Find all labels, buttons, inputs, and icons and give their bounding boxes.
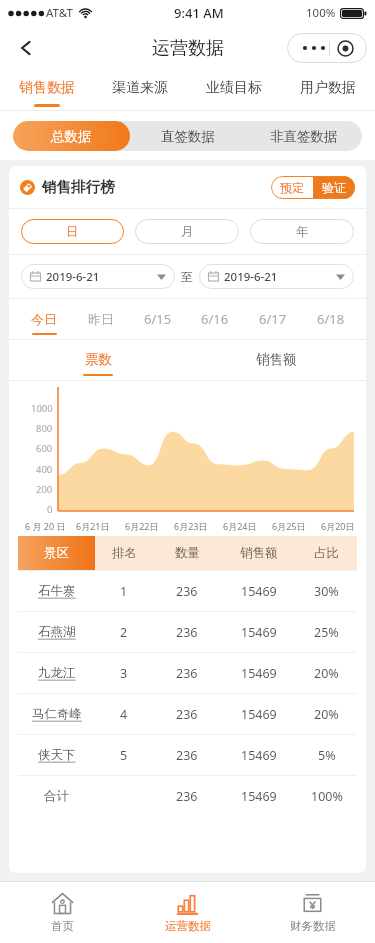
staticText: 5	[120, 747, 128, 764]
button[interactable]: 今日	[15, 299, 72, 339]
staticText: 2019-6-21	[46, 269, 100, 285]
button[interactable]: 业绩目标	[187, 70, 281, 110]
button[interactable]: 占比	[296, 536, 357, 570]
button[interactable]: 石牛寨	[18, 571, 357, 611]
staticText: 直签数据	[161, 128, 215, 145]
staticText: 侠天下	[38, 747, 76, 763]
staticText: 0	[47, 503, 53, 516]
staticText: 验证	[322, 180, 346, 195]
button[interactable]: 6/16	[186, 299, 244, 339]
staticText: 6月23日	[174, 520, 208, 532]
staticText: 3	[120, 665, 128, 682]
staticText: 15469	[241, 624, 277, 641]
staticText: 4	[120, 706, 128, 723]
staticText: 1000	[31, 402, 53, 415]
staticText: 236	[176, 747, 198, 764]
staticText: 用户数据	[300, 79, 356, 97]
staticText: 昨日	[88, 311, 114, 327]
button[interactable]: 昨日	[72, 299, 129, 339]
staticText: 25%	[314, 624, 339, 641]
staticText: 236	[176, 706, 198, 723]
staticText: 15469	[241, 665, 277, 682]
button[interactable]: 马仁奇峰	[18, 694, 357, 734]
button[interactable]: 用户数据	[281, 70, 375, 110]
staticText: 景区	[44, 545, 69, 561]
staticText: 100%	[306, 5, 336, 21]
button[interactable]: 6/18	[302, 299, 360, 339]
button[interactable]: 2019-6-21	[21, 264, 175, 289]
staticText: 销售排行榜	[42, 178, 115, 196]
button[interactable]: 非直签数据	[246, 121, 362, 151]
staticText: 236	[176, 583, 198, 600]
staticText: 800	[36, 422, 53, 435]
button[interactable]: More options and close	[287, 33, 367, 63]
staticText: 石牛寨	[38, 583, 76, 599]
staticText: 运营数据	[165, 919, 211, 933]
staticText: 数量	[175, 545, 200, 561]
staticText: 6月22日	[125, 520, 159, 532]
staticText: 236	[176, 665, 198, 682]
staticText: 236	[176, 788, 198, 805]
button[interactable]: 6/17	[244, 299, 302, 339]
button[interactable]: 直签数据	[130, 121, 246, 151]
staticText: 236	[176, 624, 198, 641]
staticText: 财务数据	[290, 919, 336, 933]
staticText: 400	[36, 463, 53, 476]
button[interactable]: 日	[21, 219, 124, 244]
button[interactable]: 数量	[153, 536, 221, 570]
button[interactable]: 合计	[18, 776, 357, 816]
staticText: 总数据	[51, 128, 92, 145]
button[interactable]: 票数	[9, 340, 187, 380]
button[interactable]: 石燕湖	[18, 612, 357, 652]
staticText: 6/15	[144, 310, 172, 328]
staticText: 马仁奇峰	[32, 706, 82, 722]
button[interactable]: Back	[6, 28, 46, 68]
staticText: 月	[181, 224, 194, 240]
button[interactable]: 财务数据	[250, 881, 375, 943]
staticText: 200	[36, 483, 53, 496]
button[interactable]: 排名	[95, 536, 153, 570]
staticText: 5%	[318, 747, 336, 764]
staticText: 15469	[241, 747, 277, 764]
staticText: 合计	[44, 788, 69, 804]
button[interactable]: 九龙江	[18, 653, 357, 693]
staticText: 6 月 20 日	[25, 520, 66, 532]
staticText: 20%	[314, 665, 339, 682]
staticText: 票数	[85, 351, 112, 368]
staticText: 6/18	[317, 310, 345, 328]
staticText: 销售额	[256, 351, 297, 368]
staticText: 年	[296, 224, 309, 240]
staticText: 渠道来源	[112, 79, 168, 97]
staticText: 9:41 AM	[174, 4, 224, 22]
button[interactable]: 首页	[0, 881, 125, 943]
staticText: 业绩目标	[206, 79, 262, 97]
button[interactable]: 2019-6-21	[199, 264, 354, 289]
staticText: 6月24日	[223, 520, 257, 532]
staticText: 日	[66, 224, 79, 240]
button[interactable]: 运营数据	[125, 881, 250, 943]
button[interactable]: 月	[135, 219, 239, 244]
staticText: 6/17	[259, 310, 287, 328]
staticText: 占比	[314, 545, 339, 561]
button[interactable]: 景区	[18, 536, 95, 570]
button[interactable]: 销售额	[221, 536, 296, 570]
staticText: 销售数据	[19, 79, 75, 97]
staticText: 6月20日	[321, 520, 355, 532]
button[interactable]: 总数据	[13, 121, 130, 151]
staticText: 6/16	[201, 310, 229, 328]
staticText: 6月25日	[272, 520, 306, 532]
staticText: 今日	[31, 311, 57, 327]
button[interactable]: 侠天下	[18, 735, 357, 775]
button[interactable]: 销售数据	[0, 70, 93, 110]
button[interactable]: 销售额	[187, 340, 366, 380]
staticText: 2019-6-21	[224, 269, 278, 285]
button[interactable]: 验证	[313, 176, 355, 199]
staticText: 6月21日	[76, 520, 110, 532]
button[interactable]: 年	[250, 219, 354, 244]
staticText: 100%	[311, 788, 343, 805]
button[interactable]: 预定	[271, 176, 313, 199]
staticText: 1	[120, 583, 128, 600]
button[interactable]: 渠道来源	[93, 70, 187, 110]
button[interactable]: 6/15	[129, 299, 186, 339]
staticText: 石燕湖	[38, 624, 76, 640]
